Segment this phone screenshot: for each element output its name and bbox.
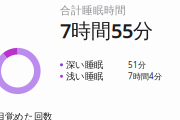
staticText: 7時間4分 [128, 71, 162, 82]
staticText: 51分 [128, 59, 146, 70]
staticText: 合計睡眠時間 [60, 4, 126, 17]
staticText: 7時間55分 [60, 17, 153, 44]
staticText: 目覚めた回数 [0, 111, 52, 120]
staticText: 浅い睡眠 [66, 70, 103, 82]
staticText: 深い睡眠 [66, 59, 103, 71]
